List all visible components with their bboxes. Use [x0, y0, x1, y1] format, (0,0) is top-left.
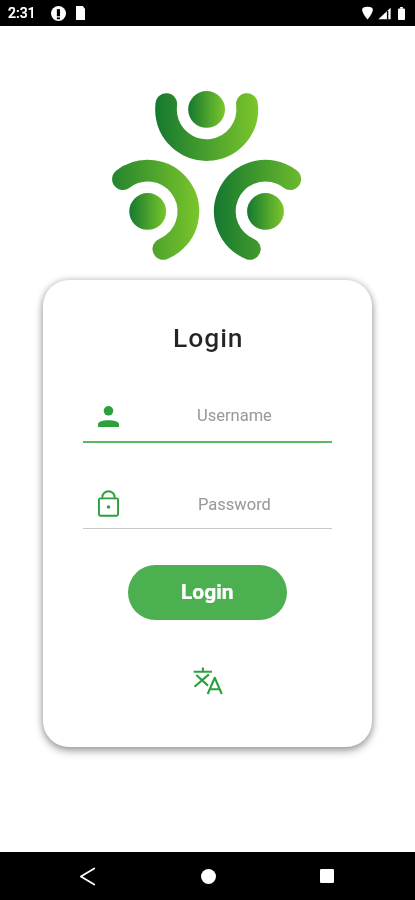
button[interactable]: Change language — [185, 657, 230, 702]
staticText: Username — [197, 406, 272, 425]
button[interactable]: Login — [128, 565, 287, 620]
staticText: Login — [181, 580, 234, 605]
button[interactable]: Back — [63, 852, 111, 900]
button[interactable]: Recent apps — [303, 852, 351, 900]
staticText: 2:31 — [8, 5, 36, 21]
button[interactable]: Home — [184, 852, 232, 900]
staticText: Password — [198, 495, 271, 514]
staticText: Login — [173, 322, 244, 353]
